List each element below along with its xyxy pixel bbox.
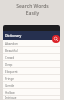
- staticText: Intrigue: [5, 96, 17, 100]
- staticText: Beautiful: [5, 49, 18, 53]
- staticText: Hollow: [5, 91, 15, 95]
- staticText: Deep: [5, 63, 13, 67]
- button[interactable]: Crowd: [3, 54, 60, 61]
- button[interactable]: Fringe: [3, 75, 60, 82]
- staticText: Dictionary: [5, 33, 22, 38]
- staticText: Fringe: [5, 77, 14, 81]
- staticText: Search Words Easily: [16, 3, 49, 17]
- staticText: Abandon: [5, 42, 18, 46]
- button[interactable]: Beautiful: [3, 47, 60, 54]
- button[interactable]: Search: [52, 35, 60, 43]
- button[interactable]: Gentle: [3, 82, 60, 89]
- staticText: Eloquent: [5, 70, 18, 74]
- button[interactable]: Abandon: [3, 40, 60, 47]
- button[interactable]: Hollow: [3, 89, 60, 96]
- staticText: Gentle: [5, 84, 15, 88]
- staticText: Crowd: [5, 56, 15, 60]
- button[interactable]: Intrigue: [3, 96, 60, 100]
- button[interactable]: Deep: [3, 61, 60, 68]
- button[interactable]: Eloquent: [3, 68, 60, 75]
